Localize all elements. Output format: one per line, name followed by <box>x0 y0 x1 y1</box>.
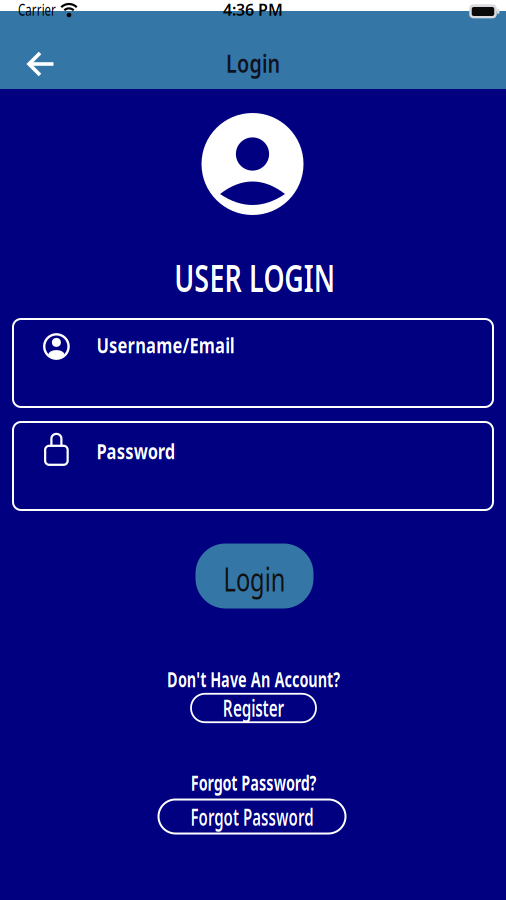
button[interactable]: Forgot Password <box>158 799 345 833</box>
staticText: Register <box>208 693 299 723</box>
staticText: Username/Email <box>96 331 274 359</box>
staticText: Forgot Password? <box>160 768 346 797</box>
staticText: USER LOGIN <box>143 253 367 302</box>
staticText: Forgot Password <box>153 801 350 832</box>
staticText: Login <box>218 46 287 80</box>
staticText: Don't Have An Account? <box>125 665 381 693</box>
staticText: Carrier <box>10 0 63 20</box>
button[interactable]: Register <box>191 694 316 722</box>
button[interactable]: Username/Email <box>13 319 493 407</box>
button[interactable]: Login <box>195 543 313 608</box>
button[interactable]: Password <box>13 422 493 510</box>
staticText: Login <box>212 558 296 600</box>
staticText: 4:36 PM <box>223 0 283 20</box>
staticText: Password <box>96 437 197 465</box>
button[interactable]: Back <box>19 42 63 86</box>
